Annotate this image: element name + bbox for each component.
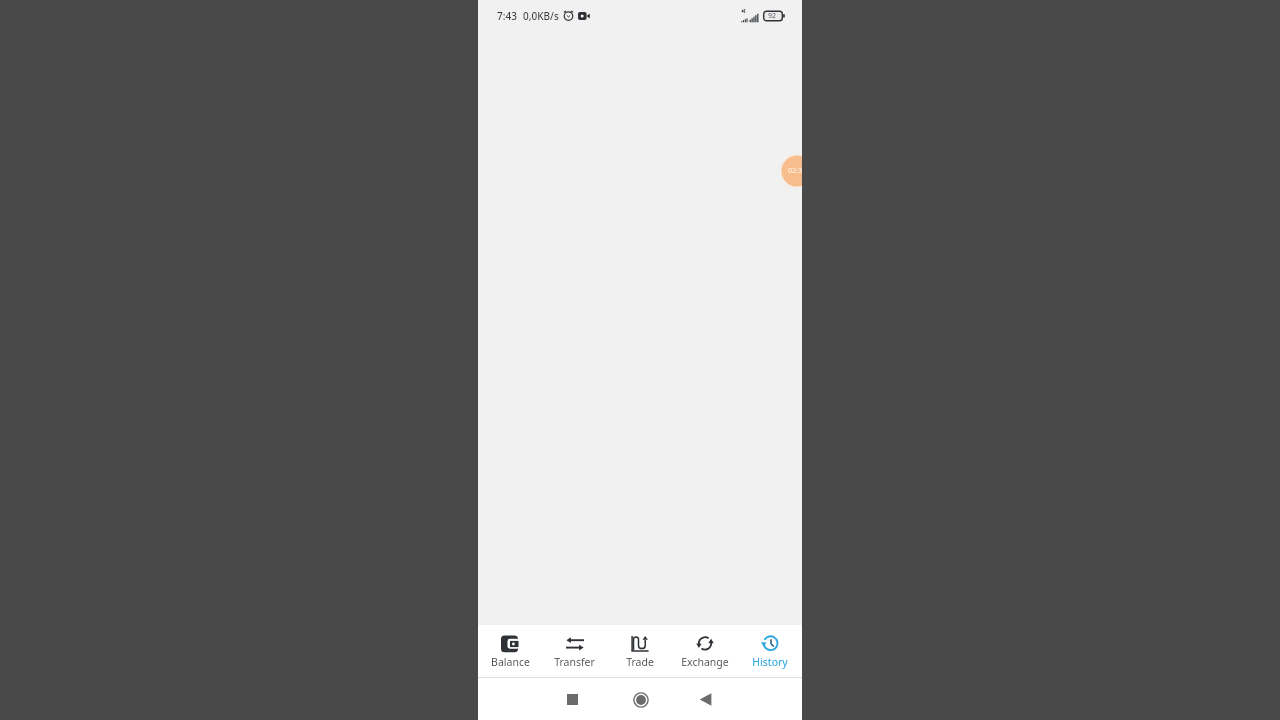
button[interactable] xyxy=(629,688,652,711)
staticText: Trade xyxy=(626,655,654,669)
staticText: 92 xyxy=(768,11,777,21)
button[interactable]: Transfer xyxy=(542,625,607,677)
button[interactable]: History xyxy=(737,625,802,677)
staticText: Balance xyxy=(491,655,530,669)
staticText: 7:43 xyxy=(497,9,517,23)
staticText: History xyxy=(752,655,788,669)
button[interactable]: Trade xyxy=(607,625,672,677)
staticText: Exchange xyxy=(681,655,729,669)
button[interactable]: Balance xyxy=(478,625,542,677)
button[interactable] xyxy=(694,688,717,711)
staticText: Transfer xyxy=(554,655,595,669)
button[interactable]: Exchange xyxy=(672,625,737,677)
staticText: 02:35 xyxy=(788,166,802,176)
staticText: 0,0KB/s xyxy=(523,9,559,23)
button[interactable] xyxy=(561,688,584,711)
button[interactable]: 02:35 xyxy=(778,152,802,190)
